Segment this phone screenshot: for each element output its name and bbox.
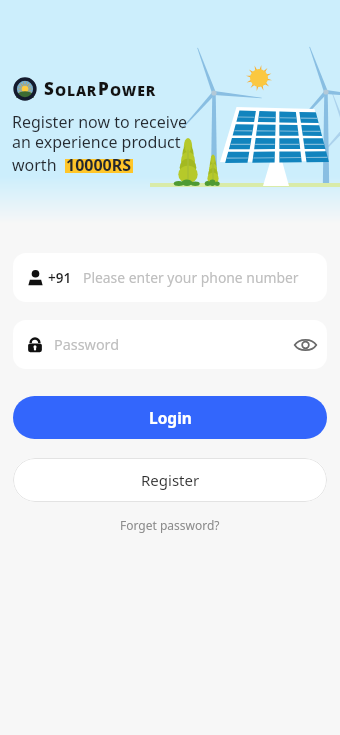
staticText: P	[98, 77, 110, 100]
staticText: an experience product	[12, 131, 181, 153]
button[interactable]: Register	[13, 458, 327, 502]
staticText: 10000RS	[66, 154, 132, 176]
button[interactable]: Show password	[290, 330, 320, 360]
button[interactable]: Forget password?	[115, 512, 225, 538]
staticText: OWER	[110, 81, 156, 100]
staticText: worth	[12, 154, 65, 176]
staticText: Register	[141, 470, 200, 490]
staticText: OLAR	[55, 81, 98, 100]
staticText: Register now to receive	[12, 111, 188, 133]
staticText: +91	[48, 269, 72, 287]
button[interactable]: Login	[13, 396, 327, 439]
staticText: Login	[149, 407, 192, 428]
staticText: Password	[54, 335, 120, 355]
button[interactable]: +91	[13, 253, 327, 302]
staticText: Please enter your phone number	[83, 268, 299, 287]
staticText: S	[44, 77, 55, 100]
